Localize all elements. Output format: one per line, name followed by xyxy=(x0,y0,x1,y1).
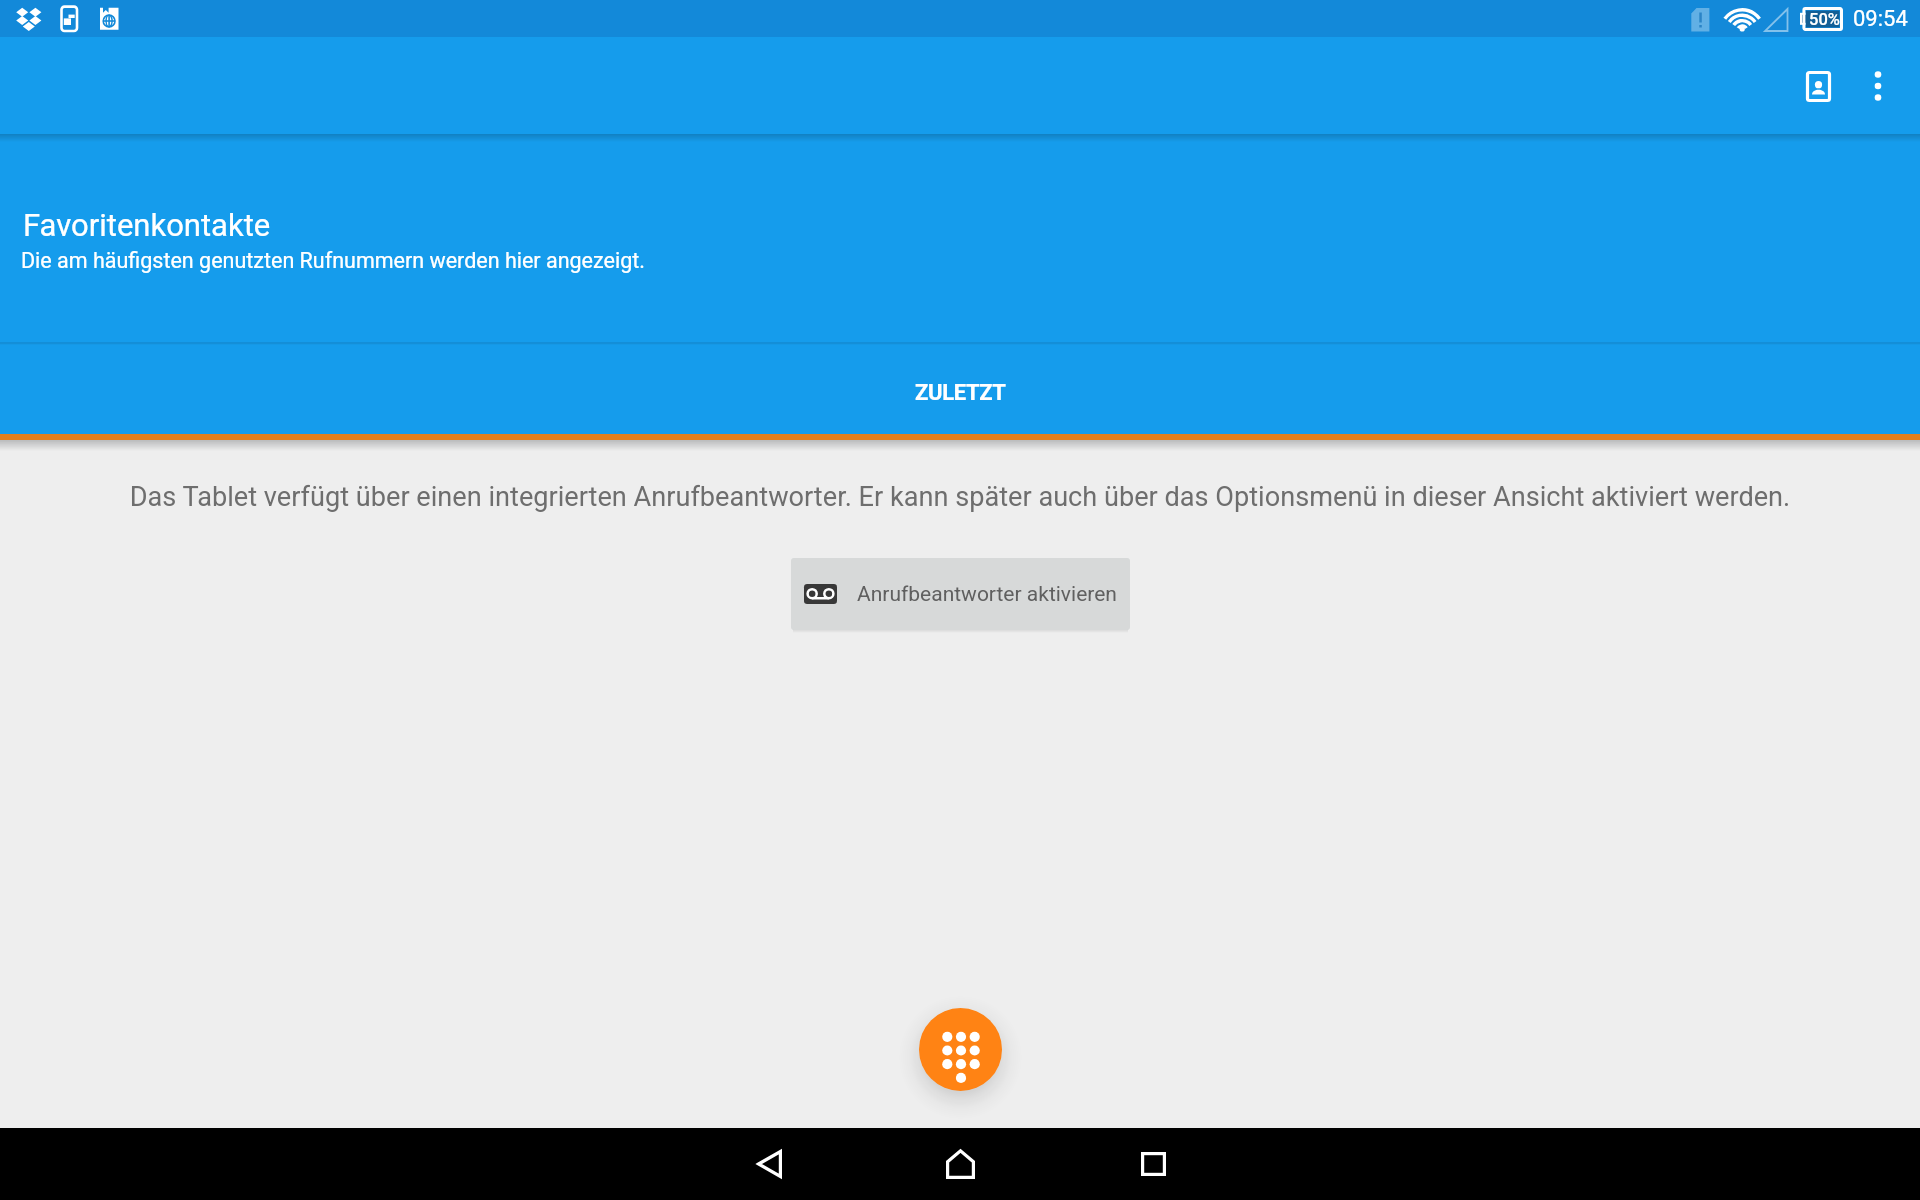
staticText: Anrufbeantworter aktivieren xyxy=(857,582,1117,607)
button[interactable]: Anrufbeantworter aktivieren xyxy=(791,558,1130,630)
button[interactable]: ZULETZT xyxy=(0,343,1920,434)
staticText: Das Tablet verfügt über einen integriert… xyxy=(40,481,1880,513)
staticText: Die am häufigsten genutzten Rufnummern w… xyxy=(21,248,645,273)
button[interactable]: Home xyxy=(924,1128,996,1200)
button[interactable]: More options xyxy=(1842,50,1914,122)
staticText: 09:54 xyxy=(1853,6,1908,32)
button[interactable]: Recents xyxy=(1117,1128,1189,1200)
staticText: ZULETZT xyxy=(915,380,1006,406)
button[interactable]: Contacts xyxy=(1782,50,1854,122)
button[interactable]: Back xyxy=(733,1128,805,1200)
staticText: Favoritenkontakte xyxy=(23,207,271,243)
button[interactable]: Dialpad xyxy=(919,1008,1002,1091)
staticText: 50% xyxy=(1809,10,1840,29)
